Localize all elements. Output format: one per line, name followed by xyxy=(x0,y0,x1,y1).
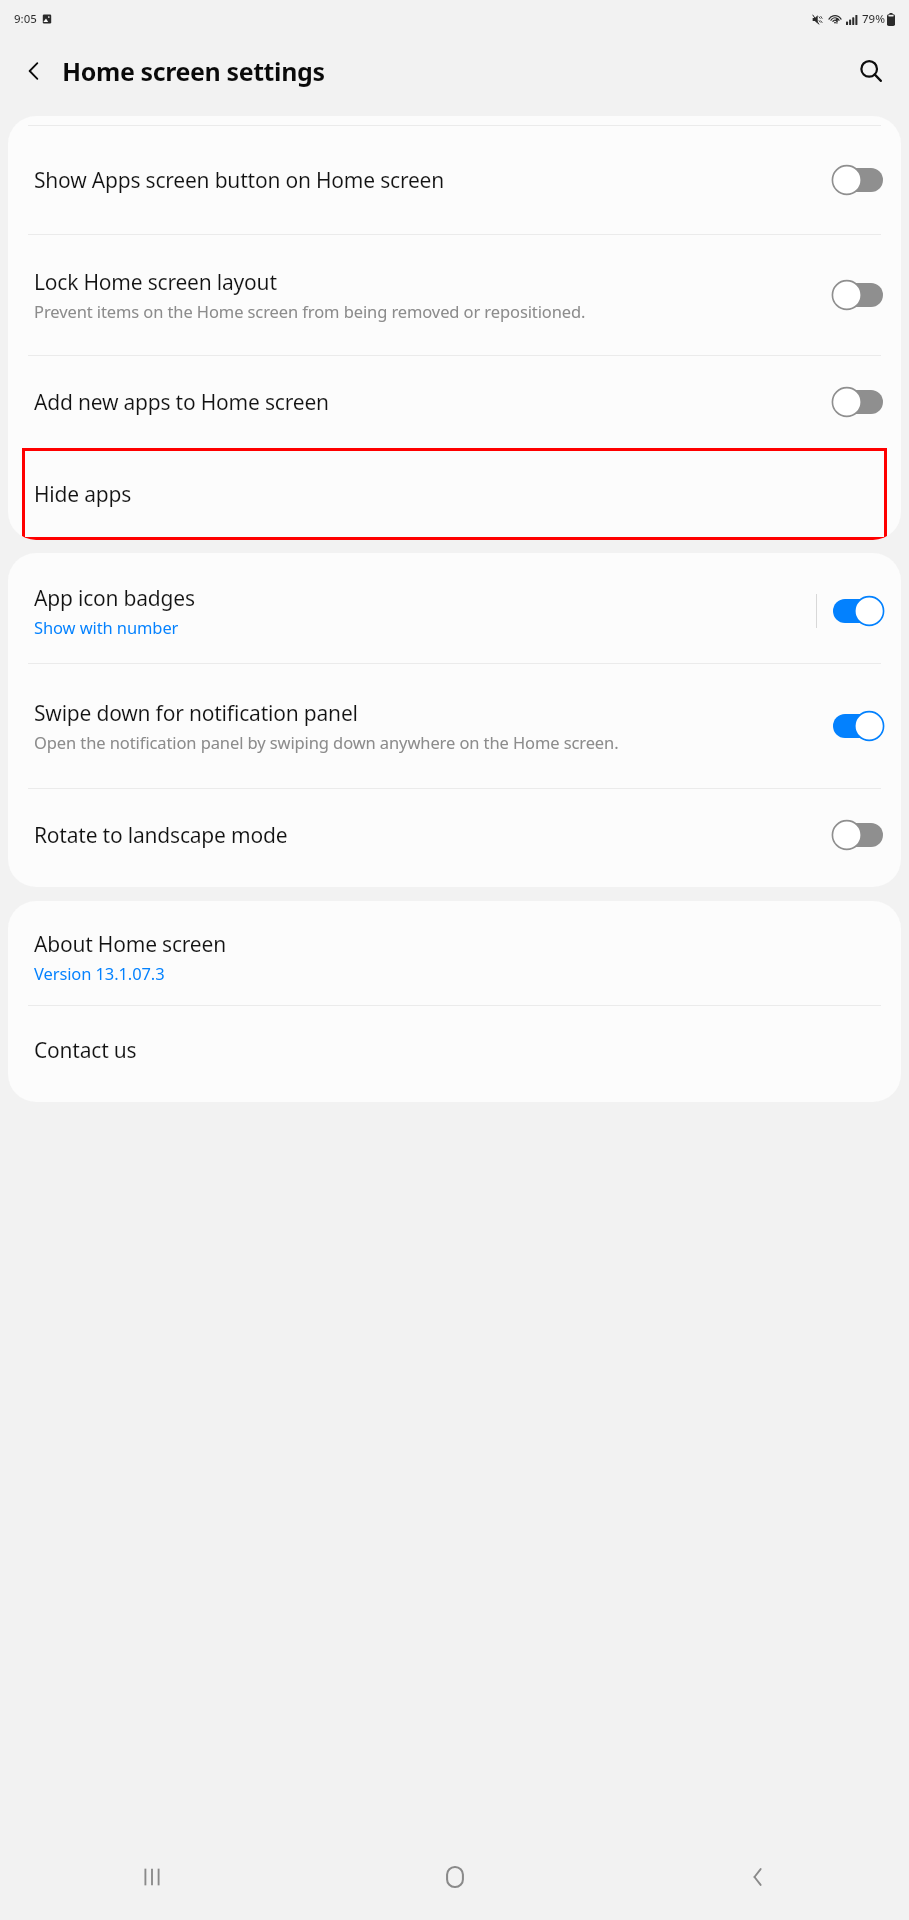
staticText: Contact us xyxy=(34,1036,137,1065)
staticText: 9:05 xyxy=(14,11,37,27)
button[interactable]: Toggle off xyxy=(833,387,883,417)
button[interactable]: Add new apps to Home screen xyxy=(8,356,901,448)
button[interactable]: Toggle off xyxy=(833,165,883,195)
button[interactable]: Hide apps xyxy=(22,448,887,540)
staticText: Add new apps to Home screen xyxy=(34,388,329,417)
staticText: Swipe down for notification panel xyxy=(34,699,358,728)
button[interactable]: Swipe down for notification panel xyxy=(8,664,901,788)
staticText: Version 13.1.07.3 xyxy=(34,962,165,984)
button[interactable]: Toggle off xyxy=(833,820,883,850)
button[interactable]: Contact us xyxy=(8,1006,901,1094)
staticText: About Home screen xyxy=(34,930,226,959)
button[interactable]: Toggle on xyxy=(833,596,883,626)
staticText: Hide apps xyxy=(34,480,132,509)
staticText: Show with number xyxy=(34,616,179,638)
button[interactable]: Rotate to landscape mode xyxy=(8,789,901,881)
staticText: 79% xyxy=(862,11,885,27)
button[interactable]: Back xyxy=(606,1834,909,1920)
staticText: Open the notification panel by swiping d… xyxy=(34,731,619,753)
button[interactable]: App icon badges xyxy=(8,559,901,663)
button[interactable]: Search xyxy=(843,43,899,99)
staticText: Lock Home screen layout xyxy=(34,268,277,297)
button[interactable]: Home xyxy=(303,1834,606,1920)
button[interactable]: Show Apps screen button on Home screen xyxy=(8,126,901,234)
staticText: Show Apps screen button on Home screen xyxy=(34,166,445,195)
button[interactable]: Back xyxy=(6,43,62,99)
staticText: App icon badges xyxy=(34,584,195,613)
staticText: Home screen settings xyxy=(62,54,325,88)
staticText: Prevent items on the Home screen from be… xyxy=(34,300,586,322)
button[interactable]: Toggle on xyxy=(833,711,883,741)
staticText: Rotate to landscape mode xyxy=(34,821,288,850)
button[interactable]: Recent apps xyxy=(0,1834,303,1920)
button[interactable]: About Home screen xyxy=(8,909,901,1005)
button[interactable]: Lock Home screen layout xyxy=(8,235,901,355)
button[interactable]: Toggle off xyxy=(833,280,883,310)
